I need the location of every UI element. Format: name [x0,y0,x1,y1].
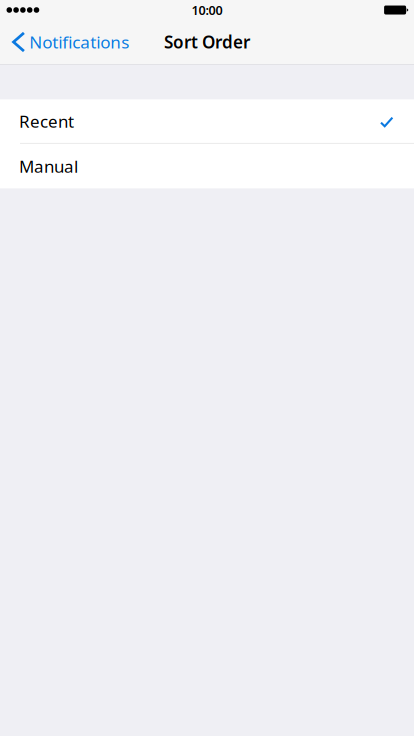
staticText: Sort Order [164,30,250,54]
staticText: Notifications [29,30,129,54]
button[interactable]: Manual [0,144,414,188]
button[interactable]: Back to Notifications [0,20,137,64]
staticText: 10:00 [191,1,222,19]
staticText: Manual [19,155,78,178]
button[interactable]: Recent [0,99,414,144]
staticText: Recent [19,110,74,133]
